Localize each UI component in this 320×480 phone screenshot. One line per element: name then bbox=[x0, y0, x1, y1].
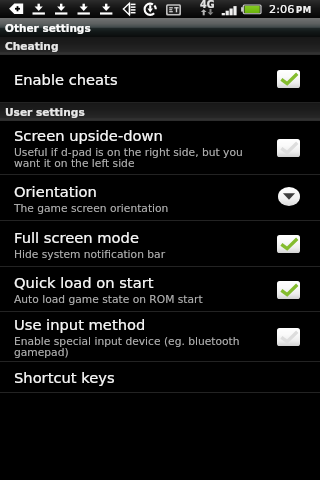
staticText: 2:06 bbox=[269, 3, 295, 16]
staticText: Screen upside-down bbox=[14, 127, 163, 144]
staticText: Orientation bbox=[14, 183, 97, 200]
button[interactable]: Enable cheats bbox=[0, 55, 320, 103]
button[interactable]: Checked bbox=[277, 281, 300, 299]
staticText: Enable special input device (eg. bluetoo… bbox=[14, 335, 240, 359]
button[interactable]: Quick load on start bbox=[0, 267, 320, 312]
button[interactable]: Full screen mode bbox=[0, 221, 320, 267]
button[interactable]: Checked bbox=[277, 70, 300, 88]
staticText: 4G bbox=[200, 0, 215, 10]
staticText: Hide system notification bar bbox=[14, 248, 166, 260]
staticText: User settings bbox=[5, 106, 85, 118]
button[interactable]: Use input method bbox=[0, 312, 320, 362]
staticText: Shortcut keys bbox=[14, 369, 115, 386]
button[interactable]: Shortcut keys bbox=[0, 362, 320, 393]
staticText: The game screen orientation bbox=[14, 202, 169, 214]
staticText: Quick load on start bbox=[14, 274, 154, 291]
staticText: Enable cheats bbox=[14, 71, 118, 88]
button[interactable]: Orientation bbox=[0, 175, 320, 221]
staticText: Full screen mode bbox=[14, 229, 139, 246]
staticText: Use input method bbox=[14, 316, 146, 333]
staticText: Auto load game state on ROM start bbox=[14, 293, 203, 305]
button[interactable]: Checked bbox=[277, 235, 300, 253]
button[interactable]: Open dropdown bbox=[278, 187, 300, 206]
staticText: PM bbox=[296, 5, 312, 15]
button[interactable]: Screen upside-down bbox=[0, 121, 320, 175]
staticText: Other settings bbox=[5, 22, 91, 34]
button[interactable]: Unchecked bbox=[277, 328, 300, 346]
staticText: Useful if d-pad is on the right side, bu… bbox=[14, 146, 243, 170]
button[interactable]: Unchecked bbox=[277, 139, 300, 157]
staticText: Cheating bbox=[5, 40, 59, 52]
